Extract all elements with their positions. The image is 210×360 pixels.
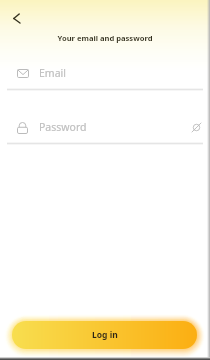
staticText: Email — [39, 66, 66, 80]
staticText: Log in — [92, 329, 118, 341]
button[interactable]: Email — [0, 61, 210, 85]
button[interactable]: Password — [0, 115, 210, 139]
button[interactable]: Log in — [12, 321, 197, 349]
button[interactable]: Back — [6, 8, 26, 28]
staticText: Password — [39, 120, 87, 134]
staticText: Your email and password — [0, 33, 210, 43]
button[interactable]: Show password — [188, 119, 204, 135]
